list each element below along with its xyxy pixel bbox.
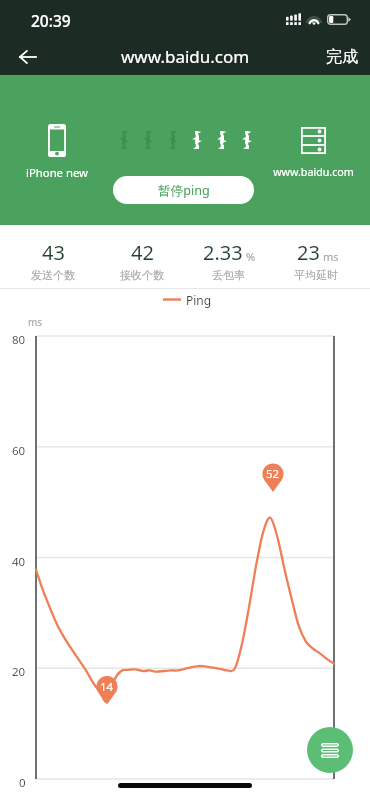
staticText: 丢包率 — [212, 268, 245, 282]
staticText: 平均延时 — [294, 268, 338, 282]
staticText: 42 — [131, 239, 154, 266]
staticText: iPhone new — [0, 165, 114, 180]
staticText: 20 — [12, 664, 26, 680]
staticText: 60 — [12, 443, 26, 459]
staticText: 80 — [12, 332, 26, 348]
staticText: 43 — [42, 239, 65, 266]
button[interactable]: 暂停ping — [113, 176, 254, 204]
staticText: 20:39 — [31, 10, 71, 31]
staticText: 完成 — [326, 47, 358, 67]
button[interactable]: Show list — [307, 727, 353, 773]
staticText: 23 — [297, 239, 320, 266]
button[interactable]: 完成 — [310, 40, 370, 74]
button[interactable]: Back — [5, 38, 50, 75]
staticText: 2.33 — [203, 239, 243, 266]
staticText: 40 — [12, 554, 26, 570]
staticText: Ping — [186, 292, 212, 308]
staticText: 发送个数 — [31, 268, 75, 282]
staticText: 14 — [100, 679, 114, 695]
staticText: www.baidu.com — [256, 165, 370, 180]
staticText: ms — [28, 315, 43, 329]
staticText: www.baidu.com — [121, 45, 250, 68]
staticText: 暂停ping — [158, 182, 210, 199]
staticText: 52 — [266, 466, 280, 482]
staticText: 接收个数 — [120, 268, 164, 282]
staticText: 0 — [19, 775, 26, 791]
staticText: % — [246, 249, 256, 264]
staticText: ms — [323, 249, 339, 264]
